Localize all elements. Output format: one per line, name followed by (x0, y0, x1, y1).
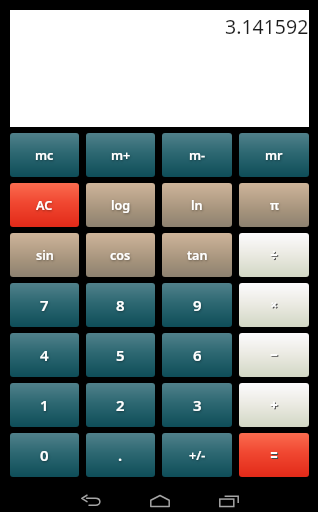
button[interactable]: Equals (239, 433, 309, 477)
button[interactable]: m- (162, 133, 232, 177)
button[interactable]: mr (239, 133, 309, 177)
staticText: mr (265, 147, 283, 164)
staticText: mc (35, 147, 54, 164)
staticText: 0 (40, 445, 49, 465)
button[interactable]: 9 (162, 283, 232, 327)
staticText: 7 (40, 295, 49, 315)
button[interactable]: 8 (86, 283, 155, 327)
button[interactable]: Recents (209, 490, 249, 512)
button[interactable]: 2 (86, 383, 155, 427)
button[interactable]: Add (239, 383, 309, 427)
staticText: cos (110, 247, 131, 264)
button[interactable]: log (86, 183, 155, 227)
button[interactable]: 7 (10, 283, 79, 327)
button[interactable]: 4 (10, 333, 79, 377)
button[interactable]: m+ (86, 133, 155, 177)
button[interactable]: Divide (239, 233, 309, 277)
staticText: 9 (193, 295, 202, 315)
staticText: m- (189, 147, 206, 164)
staticText: 1 (40, 395, 49, 415)
staticText: +/- (189, 447, 206, 464)
button[interactable]: tan (162, 233, 232, 277)
staticText: 2 (116, 395, 125, 415)
button[interactable]: π (239, 183, 309, 227)
button[interactable]: . (86, 433, 155, 477)
staticText: . (118, 445, 123, 465)
staticText: m+ (111, 147, 131, 164)
button[interactable]: Multiply (239, 283, 309, 327)
staticText: 5 (116, 345, 125, 365)
button[interactable]: mc (10, 133, 79, 177)
button[interactable]: ln (162, 183, 232, 227)
staticText: 8 (116, 295, 125, 315)
button[interactable]: 6 (162, 333, 232, 377)
staticText: AC (36, 197, 53, 214)
button[interactable]: sin (10, 233, 79, 277)
button[interactable]: AC (10, 183, 79, 227)
staticText: 6 (193, 345, 202, 365)
button[interactable]: 3 (162, 383, 232, 427)
button[interactable]: 0 (10, 433, 79, 477)
staticText: 4 (40, 345, 49, 365)
staticText: π (270, 197, 279, 214)
button[interactable]: Subtract (239, 333, 309, 377)
button[interactable]: cos (86, 233, 155, 277)
button[interactable]: 1 (10, 383, 79, 427)
staticText: log (111, 197, 131, 214)
button[interactable]: 5 (86, 333, 155, 377)
button[interactable]: Home (140, 490, 180, 512)
button[interactable]: Back (71, 490, 111, 512)
staticText: sin (36, 247, 54, 264)
button[interactable]: Result display (10, 10, 309, 127)
staticText: 3 (193, 395, 202, 415)
staticText: ln (191, 197, 203, 214)
button[interactable]: +/- (162, 433, 232, 477)
staticText: tan (187, 247, 208, 264)
staticText: 3.141592 (225, 13, 309, 40)
